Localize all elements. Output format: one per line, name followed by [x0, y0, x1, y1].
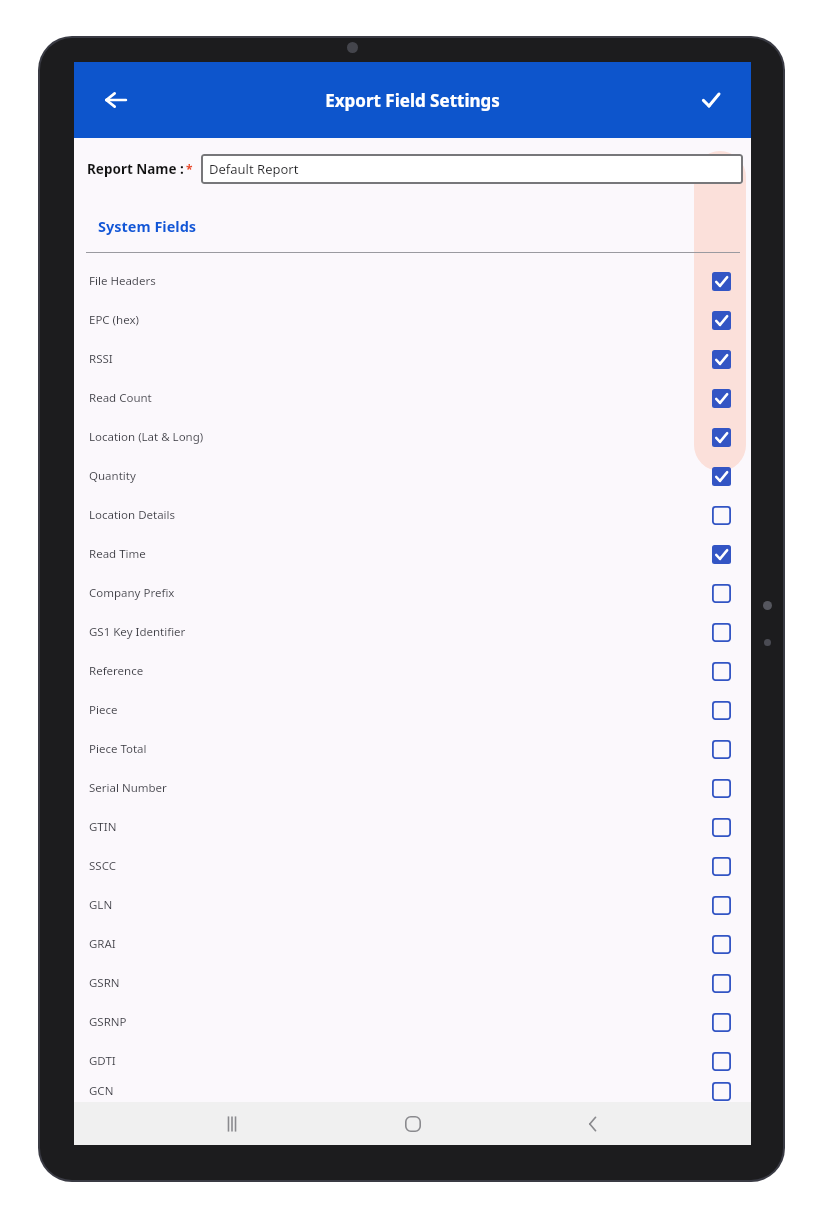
button[interactable]: Reference [74, 651, 751, 690]
button[interactable]: Piece Total [74, 729, 751, 768]
button[interactable]: GLN [74, 885, 751, 924]
button[interactable]: Default Report [201, 154, 743, 184]
staticText: GSRNP [89, 1014, 711, 1030]
button[interactable]: GSRNP [74, 1002, 751, 1041]
button[interactable]: Location Details [74, 495, 751, 534]
staticText: Piece [89, 702, 711, 718]
staticText: Serial Number [89, 780, 711, 796]
staticText: Read Count [89, 390, 711, 406]
button[interactable]: Save [687, 76, 735, 124]
button[interactable]: Read Count [74, 378, 751, 417]
button[interactable]: GRAI [74, 924, 751, 963]
button[interactable]: RSSI [74, 339, 751, 378]
staticText: GTIN [89, 819, 711, 835]
staticText: GS1 Key Identifier [89, 624, 711, 640]
button[interactable]: Quantity [74, 456, 751, 495]
staticText: GRAI [89, 936, 711, 952]
staticText: Piece Total [89, 741, 711, 757]
staticText: System Fields [98, 216, 197, 236]
staticText: RSSI [89, 351, 711, 367]
staticText: Company Prefix [89, 585, 711, 601]
staticText: GLN [89, 897, 711, 913]
button[interactable]: Back [92, 76, 140, 124]
button[interactable]: Serial Number [74, 768, 751, 807]
button[interactable]: Company Prefix [74, 573, 751, 612]
button[interactable]: GCN [74, 1080, 751, 1102]
button[interactable]: Recent apps [209, 1102, 255, 1145]
staticText: File Headers [89, 273, 711, 289]
button[interactable]: GSRN [74, 963, 751, 1002]
button[interactable]: EPC (hex) [74, 300, 751, 339]
staticText: GCN [89, 1083, 711, 1099]
button[interactable]: Piece [74, 690, 751, 729]
staticText: Report Name : [87, 160, 184, 178]
staticText: Read Time [89, 546, 711, 562]
button[interactable]: SSCC [74, 846, 751, 885]
button[interactable]: GTIN [74, 807, 751, 846]
button[interactable]: System Fields [96, 214, 199, 238]
staticText: * [186, 161, 193, 177]
button[interactable]: Location (Lat & Long) [74, 417, 751, 456]
staticText: Quantity [89, 468, 711, 484]
staticText: Location Details [89, 507, 711, 523]
staticText: GDTI [89, 1053, 711, 1069]
staticText: Export Field Settings [325, 89, 500, 112]
staticText: Default Report [209, 160, 299, 178]
staticText: Location (Lat & Long) [89, 429, 711, 445]
staticText: SSCC [89, 858, 711, 874]
button[interactable]: Home [390, 1102, 436, 1145]
staticText: EPC (hex) [89, 312, 711, 328]
button[interactable]: Read Time [74, 534, 751, 573]
button[interactable]: Back [570, 1102, 616, 1145]
button[interactable]: GS1 Key Identifier [74, 612, 751, 651]
button[interactable]: GDTI [74, 1041, 751, 1080]
staticText: Reference [89, 663, 711, 679]
staticText: GSRN [89, 975, 711, 991]
button[interactable]: File Headers [74, 261, 751, 300]
